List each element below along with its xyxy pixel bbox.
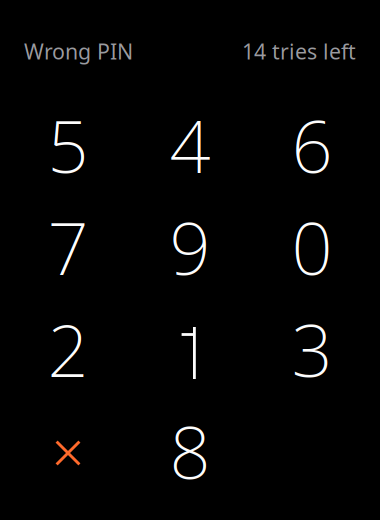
staticText: 6 [291, 96, 332, 194]
staticText: 3 [291, 300, 332, 398]
button[interactable]: 3 [251, 298, 373, 400]
staticText: 2 [47, 300, 88, 398]
staticText: 5 [47, 96, 88, 194]
staticText: 8 [169, 402, 210, 500]
staticText: 9 [169, 198, 210, 296]
button[interactable]: 4 [129, 94, 251, 196]
button[interactable]: 5 [7, 94, 129, 196]
button[interactable]: 6 [251, 94, 373, 196]
button[interactable]: 2 [7, 298, 129, 400]
button[interactable]: Clear [7, 400, 129, 502]
button[interactable]: 8 [129, 400, 251, 502]
button[interactable]: 0 [251, 196, 373, 298]
staticText: 4 [169, 96, 210, 194]
button[interactable]: 7 [7, 196, 129, 298]
staticText: 0 [291, 198, 332, 296]
staticText: Wrong PIN [24, 37, 133, 65]
staticText: 14 tries left [242, 37, 356, 65]
staticText: 7 [47, 198, 88, 296]
button[interactable]: 1 [129, 298, 251, 400]
button[interactable]: 9 [129, 196, 251, 298]
